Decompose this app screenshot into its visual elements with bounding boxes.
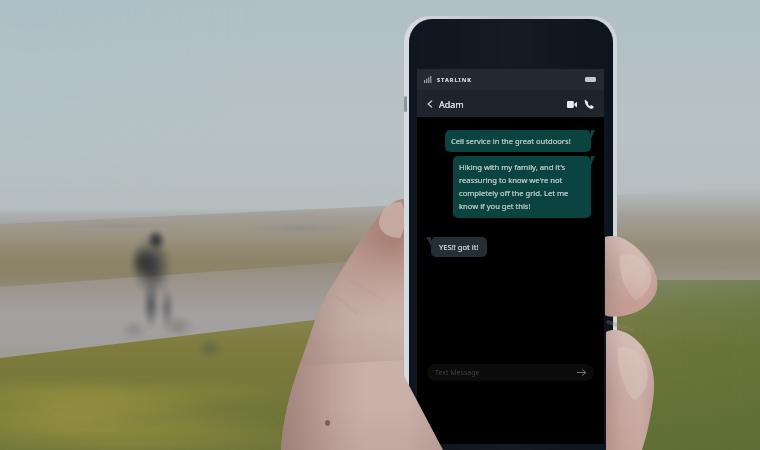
button[interactable]: Text Message: [427, 364, 594, 381]
button[interactable]: Video call: [564, 96, 580, 112]
staticText: Text Message: [435, 368, 480, 378]
staticText: Cell service in the great outdoors!: [451, 136, 571, 146]
staticText: STARLINK: [437, 76, 473, 84]
staticText: YES!! got it!: [439, 242, 479, 252]
staticText: Adam: [439, 98, 464, 110]
button[interactable]: Hiking with my family, and it's reassuri…: [453, 156, 591, 218]
staticText: Hiking with my family, and it's reassuri…: [459, 162, 585, 212]
button[interactable]: Cell service in the great outdoors!: [445, 130, 591, 152]
button[interactable]: Back: [422, 96, 437, 111]
button[interactable]: YES!! got it!: [431, 237, 487, 257]
button[interactable]: Call: [581, 96, 597, 112]
